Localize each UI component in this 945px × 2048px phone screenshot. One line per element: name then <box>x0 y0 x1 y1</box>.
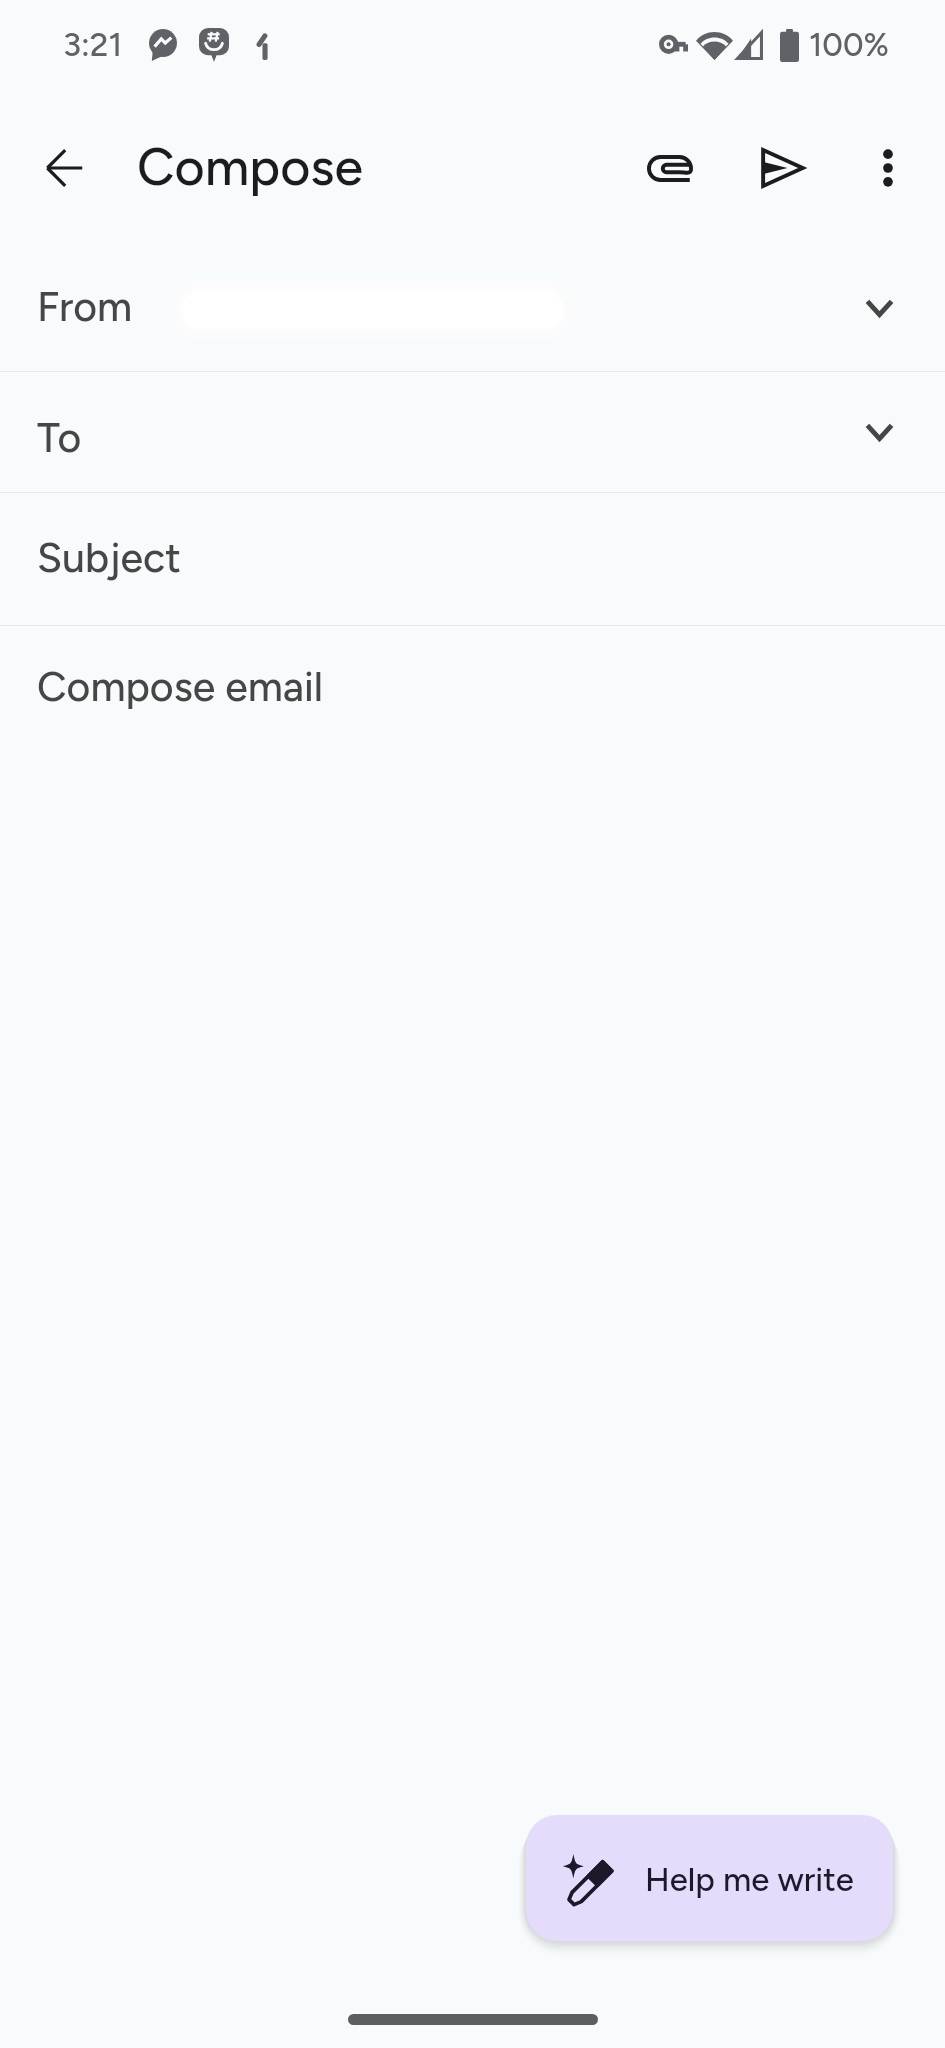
button[interactable]: Send <box>736 122 828 214</box>
staticText: Help me write <box>645 1860 854 1900</box>
button[interactable]: From <box>0 245 945 371</box>
staticText: 100% <box>809 26 889 64</box>
button[interactable]: Compose email <box>0 626 945 758</box>
staticText: Compose email <box>37 662 324 711</box>
button[interactable]: Navigate up <box>18 122 110 214</box>
staticText: To <box>37 413 82 462</box>
staticText: 3:21 <box>63 25 123 65</box>
button[interactable]: Help me write <box>526 1815 893 1941</box>
button[interactable]: To <box>0 372 945 492</box>
staticText: Subject <box>37 533 181 582</box>
button[interactable]: Subject <box>0 493 945 625</box>
button[interactable]: More options <box>842 122 934 214</box>
staticText: From <box>37 282 133 331</box>
staticText: Compose <box>137 136 364 198</box>
button[interactable]: Attach file <box>624 122 716 214</box>
